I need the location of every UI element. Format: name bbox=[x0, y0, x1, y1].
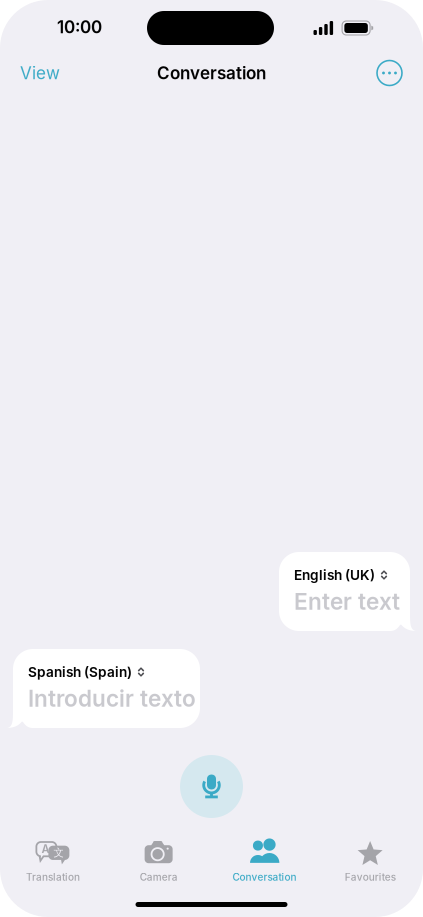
staticText: 10:00 bbox=[57, 17, 102, 37]
staticText: Conversation bbox=[232, 871, 296, 883]
staticText: Spanish (Spain) bbox=[28, 664, 132, 680]
staticText: English (UK) bbox=[294, 567, 375, 583]
staticText: Camera bbox=[140, 871, 178, 883]
staticText: A bbox=[41, 842, 49, 856]
staticText: Favourites bbox=[345, 871, 396, 883]
button[interactable]: More options bbox=[377, 56, 423, 90]
button[interactable]: View bbox=[0, 56, 78, 90]
button[interactable]: Record audio bbox=[180, 755, 243, 818]
staticText: Introducir texto bbox=[28, 685, 196, 712]
staticText: 文 bbox=[53, 846, 64, 859]
staticText: Conversation bbox=[157, 63, 266, 83]
staticText: Enter text bbox=[294, 588, 400, 615]
button[interactable]: Camera bbox=[106, 838, 212, 888]
staticText: View bbox=[20, 63, 60, 83]
button[interactable]: A bbox=[0, 838, 106, 888]
button[interactable]: Conversation bbox=[211, 838, 317, 888]
button[interactable]: Favourites bbox=[317, 838, 423, 888]
staticText: Translation bbox=[26, 871, 80, 883]
